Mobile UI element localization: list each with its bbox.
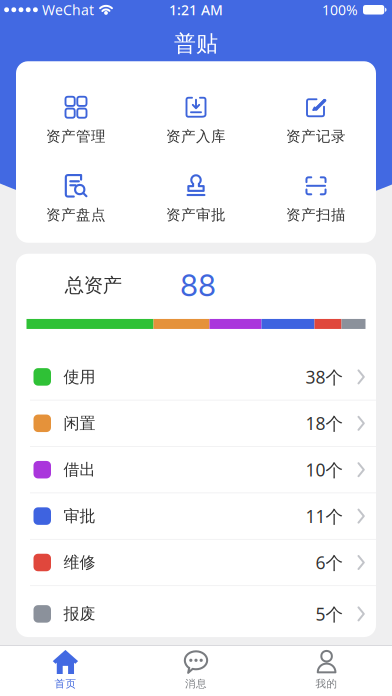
staticText: 消息 (185, 677, 207, 690)
button[interactable]: 资产审批 (136, 174, 256, 224)
staticText: 资产盘点 (46, 206, 106, 224)
staticText: 审批 (63, 506, 95, 526)
staticText: WeChat (42, 0, 94, 19)
staticText: 11个 (305, 504, 343, 528)
staticText: 维修 (63, 552, 95, 573)
staticText: 使用 (63, 367, 95, 387)
button[interactable]: 维修 (16, 540, 376, 585)
button[interactable]: 资产入库 (136, 95, 256, 145)
button[interactable]: 首页 (0, 646, 131, 696)
staticText: 6个 (315, 551, 343, 574)
staticText: 闲置 (63, 413, 95, 433)
staticText: 100% (322, 0, 358, 19)
staticText: 我的 (316, 677, 338, 690)
staticText: 普贴 (174, 30, 218, 58)
staticText: 报废 (63, 604, 95, 624)
button[interactable]: 资产记录 (256, 95, 376, 145)
staticText: 38个 (305, 365, 343, 389)
button[interactable]: 闲置 (16, 400, 376, 446)
staticText: 首页 (54, 677, 76, 690)
staticText: 资产管理 (46, 127, 106, 145)
staticText: 资产审批 (166, 206, 226, 224)
staticText: 资产记录 (286, 127, 346, 145)
button[interactable]: 使用 (16, 354, 376, 400)
staticText: 总资产 (65, 273, 122, 297)
button[interactable]: 借出 (16, 447, 376, 493)
staticText: 资产入库 (166, 127, 226, 145)
staticText: 1:21 AM (169, 0, 223, 19)
staticText: 资产扫描 (286, 206, 346, 224)
staticText: 借出 (63, 460, 95, 480)
staticText: 5个 (315, 602, 343, 626)
button[interactable]: 报废 (16, 591, 376, 637)
button[interactable]: 消息 (131, 646, 261, 696)
staticText: 18个 (305, 411, 343, 435)
button[interactable]: 审批 (16, 493, 376, 539)
button[interactable]: 资产扫描 (256, 174, 376, 224)
button[interactable]: 资产管理 (16, 95, 136, 145)
button[interactable]: 资产盘点 (16, 174, 136, 224)
staticText: 10个 (305, 458, 343, 482)
staticText: 88 (180, 267, 216, 303)
button[interactable]: 我的 (261, 646, 392, 696)
